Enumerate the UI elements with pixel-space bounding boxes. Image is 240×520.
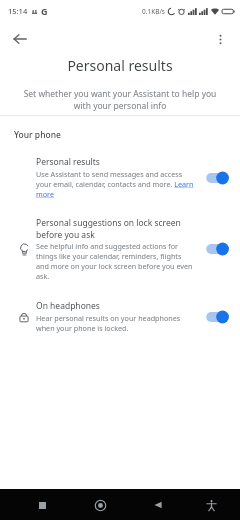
button[interactable]: On headphones [0, 296, 240, 337]
button[interactable]: Home [87, 492, 113, 518]
staticText: G [41, 5, 48, 17]
staticText: Hear personal results on your headphones… [36, 313, 196, 333]
staticText: 15:14 [8, 6, 28, 16]
staticText: Use Assistant to send messages and acces… [36, 169, 196, 199]
staticText: Personal suggestions on lock screen befo… [36, 217, 196, 240]
staticText: 0.1KB/s [142, 7, 165, 16]
staticText: Personal results [67, 56, 173, 75]
button[interactable]: Toggle on [202, 167, 232, 189]
staticText: Personal results [36, 156, 100, 168]
button[interactable]: Personal suggestions on lock screen befo… [0, 213, 240, 285]
staticText: Set whether you want your Assistant to h… [22, 88, 218, 112]
button[interactable]: Back [145, 492, 171, 518]
staticText: On headphones [36, 300, 100, 312]
button[interactable]: Back [7, 26, 33, 52]
button[interactable]: Accessibility [198, 492, 224, 518]
button[interactable]: Personal results [0, 152, 240, 203]
button[interactable]: Toggle on [202, 238, 232, 260]
staticText: Your phone [14, 129, 61, 141]
button[interactable]: Toggle on [202, 306, 232, 328]
staticText: See helpful info and suggested actions f… [36, 241, 196, 281]
button[interactable]: Recents [29, 492, 55, 518]
button[interactable]: More options [207, 26, 233, 52]
